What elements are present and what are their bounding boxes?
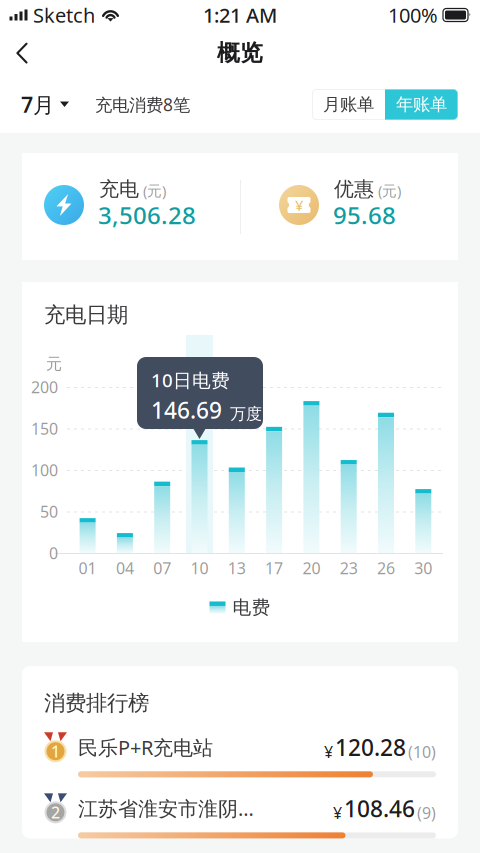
staticText: 消费排行榜 (44, 690, 149, 716)
staticText: 04 (116, 557, 134, 579)
staticText: ¥ (295, 195, 303, 215)
staticText: 2 (51, 802, 60, 823)
staticText: Sketch (33, 2, 95, 28)
staticText: 120.28 (335, 732, 406, 762)
button[interactable]: 月账单 (312, 89, 385, 120)
staticText: 108.46 (344, 793, 415, 823)
staticText: 17 (265, 557, 283, 579)
staticText: 10日电费 (151, 368, 230, 392)
staticText: 万度 (230, 404, 262, 424)
staticText: 元 (46, 354, 62, 374)
staticText: ¥ (333, 802, 342, 823)
staticText: (9) (417, 802, 436, 823)
staticText: 07 (153, 557, 171, 579)
staticText: 01 (79, 557, 97, 579)
staticText: 20 (302, 557, 320, 579)
staticText: 10 (190, 557, 208, 579)
staticText: (元) (378, 181, 401, 200)
staticText: (元) (143, 181, 166, 200)
staticText: 200 (31, 376, 58, 398)
button[interactable]: 返回 (0, 30, 46, 76)
button[interactable]: 年账单 (385, 89, 458, 120)
staticText: 146.69 (151, 395, 222, 425)
staticText: 概览 (217, 39, 263, 67)
staticText: 13 (228, 557, 246, 579)
button[interactable]: 1 (22, 716, 458, 777)
staticText: 民乐P+R充电站 (78, 734, 213, 761)
button[interactable]: 7月 (21, 84, 69, 124)
staticText: 7月 (21, 90, 54, 119)
button[interactable]: 2 (22, 777, 458, 838)
staticText: 年账单 (396, 94, 447, 115)
staticText: 100% (388, 2, 438, 28)
staticText: 30 (414, 557, 432, 579)
staticText: 100 (31, 459, 58, 481)
staticText: 150 (31, 418, 58, 439)
staticText: 充电日期 (44, 302, 128, 328)
staticText: 50 (40, 501, 58, 522)
staticText: 26 (377, 557, 395, 579)
staticText: 1:21 AM (203, 2, 277, 28)
staticText: ¥ (324, 741, 333, 762)
staticText: 优惠 (334, 177, 374, 201)
staticText: 月账单 (323, 94, 374, 115)
staticText: 95.68 (333, 199, 396, 231)
staticText: 江苏省淮安市淮阴… (78, 795, 254, 822)
staticText: 充电 (99, 177, 139, 201)
staticText: 23 (340, 557, 358, 579)
staticText: (10) (408, 741, 436, 762)
staticText: 0 (49, 542, 58, 564)
staticText: 1 (51, 741, 60, 762)
staticText: 电费 (232, 596, 270, 619)
staticText: 3,506.28 (98, 199, 196, 231)
staticText: 充电消费8笔 (95, 93, 190, 116)
